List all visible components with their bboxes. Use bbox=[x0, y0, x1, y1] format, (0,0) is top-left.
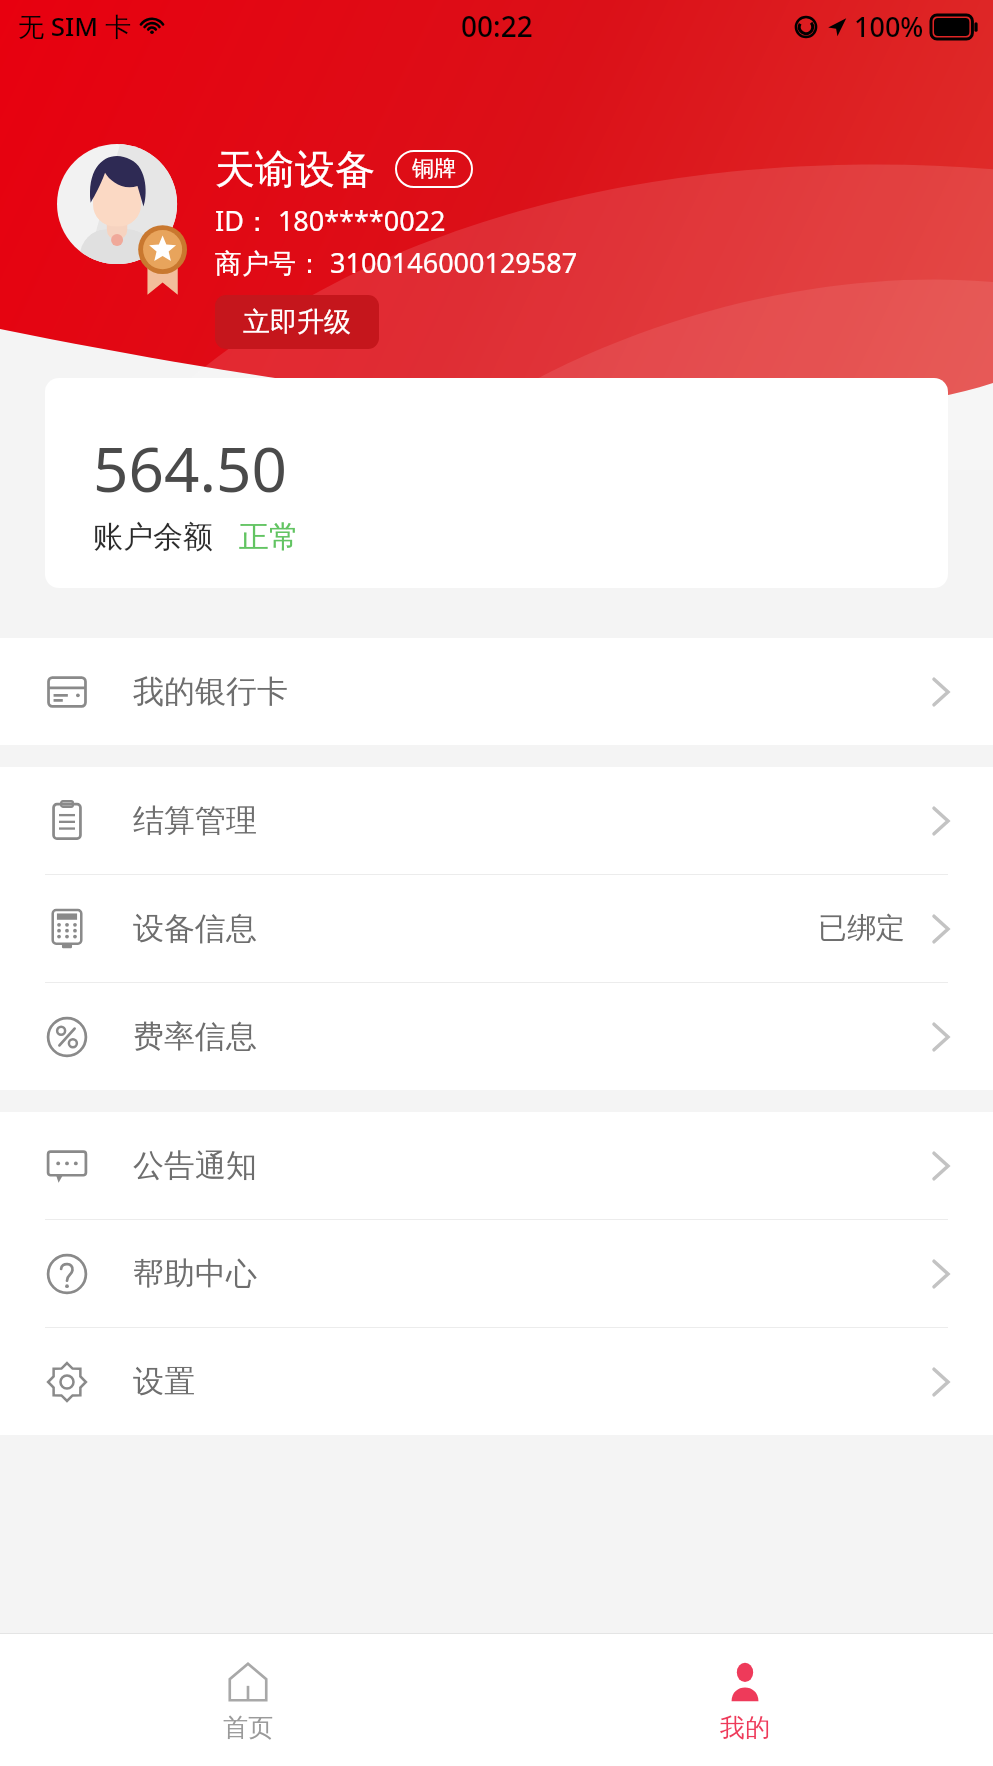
staticText: 设置 bbox=[133, 1362, 195, 1401]
staticText: 无 SIM 卡 bbox=[18, 8, 131, 44]
staticText: 00:22 bbox=[461, 7, 533, 45]
staticText: 账户余额 bbox=[93, 518, 213, 556]
button[interactable]: 首页 bbox=[0, 1634, 496, 1766]
staticText: 100% bbox=[854, 8, 924, 45]
staticText: 564.50 bbox=[93, 426, 287, 510]
button[interactable]: 费率信息 bbox=[0, 983, 993, 1090]
staticText: ID： 180****0022 bbox=[215, 202, 446, 239]
button[interactable]: 帮助中心 bbox=[0, 1220, 993, 1327]
staticText: 我的 bbox=[720, 1712, 770, 1743]
staticText: 商户号： 3100146000129587 bbox=[215, 244, 578, 281]
button[interactable]: 我的银行卡 bbox=[0, 638, 993, 745]
button[interactable]: 结算管理 bbox=[0, 767, 993, 874]
staticText: 公告通知 bbox=[133, 1146, 257, 1185]
button[interactable]: 设备信息 bbox=[0, 875, 993, 982]
staticText: 铜牌 bbox=[412, 155, 456, 183]
button[interactable]: 设置 bbox=[0, 1328, 993, 1435]
staticText: 费率信息 bbox=[133, 1017, 257, 1056]
staticText: 天谕设备 bbox=[215, 144, 375, 194]
staticText: 帮助中心 bbox=[133, 1254, 257, 1293]
staticText: 已绑定 bbox=[818, 910, 905, 947]
staticText: 结算管理 bbox=[133, 801, 257, 840]
staticText: 立即升级 bbox=[243, 305, 351, 339]
staticText: 正常 bbox=[239, 518, 299, 556]
button[interactable]: 公告通知 bbox=[0, 1112, 993, 1219]
button[interactable]: 564.50 bbox=[45, 378, 948, 588]
staticText: 我的银行卡 bbox=[133, 672, 288, 711]
staticText: 首页 bbox=[223, 1712, 273, 1743]
button[interactable]: 铜牌 bbox=[395, 150, 473, 188]
button[interactable]: 我的 bbox=[496, 1634, 993, 1766]
staticText: 设备信息 bbox=[133, 909, 257, 948]
button[interactable]: 立即升级 bbox=[215, 295, 379, 349]
